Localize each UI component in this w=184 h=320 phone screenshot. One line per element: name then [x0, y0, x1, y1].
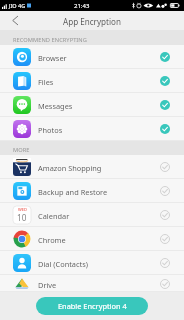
- button[interactable]: Chrome: [0, 227, 184, 251]
- staticText: Amazon Shopping: [38, 163, 102, 173]
- button[interactable]: Enable Encryption 4: [36, 297, 148, 315]
- staticText: Backup and Restore: [38, 187, 108, 197]
- staticText: WED: [18, 207, 27, 212]
- button[interactable]: Backup and Restore: [0, 179, 184, 203]
- button[interactable]: Photos: [0, 117, 184, 141]
- button[interactable]: Amazon Shopping: [0, 155, 184, 179]
- staticText: Chrome: [38, 235, 66, 245]
- staticText: 10: [17, 212, 27, 223]
- staticText: JIO 4G: [9, 2, 26, 9]
- button[interactable]: Browser: [0, 45, 184, 69]
- staticText: Dial (Contacts): [38, 259, 88, 269]
- staticText: 21:43: [74, 2, 90, 10]
- staticText: Photos: [38, 125, 63, 135]
- staticText: Messages: [38, 101, 73, 111]
- staticText: App Encryption: [63, 16, 121, 27]
- button[interactable]: WED: [0, 203, 184, 227]
- staticText: Calendar: [38, 211, 70, 221]
- staticText: Browser: [38, 53, 67, 63]
- button[interactable]: Files: [0, 69, 184, 93]
- staticText: Files: [38, 77, 54, 87]
- staticText: MORE: [13, 146, 30, 154]
- button[interactable]: Back: [0, 11, 30, 30]
- button[interactable]: Drive: [0, 275, 184, 292]
- button[interactable]: Messages: [0, 93, 184, 117]
- button[interactable]: Dial (Contacts): [0, 251, 184, 275]
- staticText: Drive: [38, 280, 57, 290]
- staticText: RECOMMEND ENCRYPTING: [13, 36, 87, 44]
- staticText: Enable Encryption 4: [58, 301, 127, 311]
